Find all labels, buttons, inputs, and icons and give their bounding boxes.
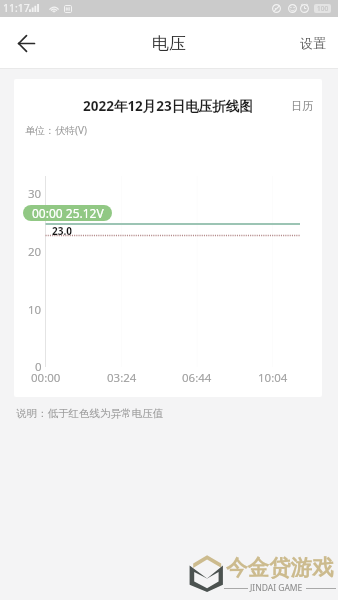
button[interactable]: 设置 [300, 17, 326, 69]
staticText: 日历 [291, 99, 313, 113]
staticText: 00:00 25.12V [32, 205, 104, 221]
staticText: 10 [28, 302, 42, 318]
button[interactable]: Back [6, 23, 46, 63]
button[interactable]: 日历 [291, 99, 313, 113]
staticText: 电压 [152, 33, 186, 54]
staticText: 00:00 [31, 370, 61, 386]
staticText: JINDAI GAME [250, 582, 303, 594]
staticText: 今金贷游戏 [226, 554, 334, 581]
staticText: 20 [28, 244, 42, 260]
staticText: 10:04 [258, 370, 288, 386]
staticText: 11:17 [3, 1, 30, 15]
staticText: 06:44 [182, 370, 212, 386]
staticText: 设置 [300, 35, 326, 51]
staticText: 0 [35, 359, 42, 375]
staticText: 100 [317, 4, 329, 13]
staticText: 30 [28, 186, 42, 202]
staticText: 单位：伏特(V) [25, 123, 87, 137]
other: Logo [188, 552, 226, 594]
staticText: 03:24 [107, 370, 137, 386]
staticText: 23.0 [52, 224, 72, 238]
staticText: 说明：低于红色线为异常电压值 [16, 407, 163, 420]
staticText: 2022年12月23日电压折线图 [83, 97, 253, 115]
